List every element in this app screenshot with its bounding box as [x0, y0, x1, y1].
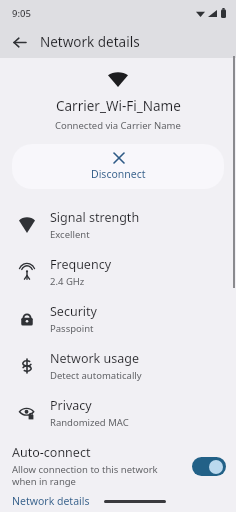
staticText: 2.4 GHz: [50, 275, 85, 288]
button[interactable]: Privacy: [0, 389, 236, 436]
staticText: Signal strength: [50, 209, 140, 226]
button[interactable]: Auto-connect: [0, 440, 236, 494]
staticText: Security: [50, 303, 97, 320]
staticText: Network details: [12, 494, 90, 508]
staticText: Passpoint: [50, 322, 94, 335]
staticText: Allow connection to this network when in…: [12, 463, 184, 488]
button[interactable]: Back: [6, 29, 32, 55]
staticText: Auto-connect: [12, 444, 91, 461]
staticText: Connected via Carrier Name: [55, 119, 181, 132]
staticText: Disconnect: [91, 167, 146, 181]
staticText: Randomized MAC: [50, 416, 129, 429]
staticText: Carrier_Wi-Fi_Name: [56, 97, 181, 115]
button[interactable]: Auto-connect toggle: [192, 457, 226, 476]
button[interactable]: Disconnect: [12, 144, 224, 189]
staticText: Privacy: [50, 397, 92, 414]
button[interactable]: Network details: [12, 494, 90, 508]
button[interactable]: Security: [0, 295, 236, 342]
staticText: Detect automatically: [50, 369, 142, 382]
staticText: Frequency: [50, 256, 112, 273]
button[interactable]: Network usage: [0, 342, 236, 389]
staticText: Network details: [40, 33, 140, 51]
button[interactable]: Signal strength: [0, 201, 236, 248]
staticText: 9:05: [12, 7, 31, 20]
staticText: Network usage: [50, 350, 140, 367]
staticText: Excellent: [50, 228, 90, 241]
button[interactable]: Frequency: [0, 248, 236, 295]
